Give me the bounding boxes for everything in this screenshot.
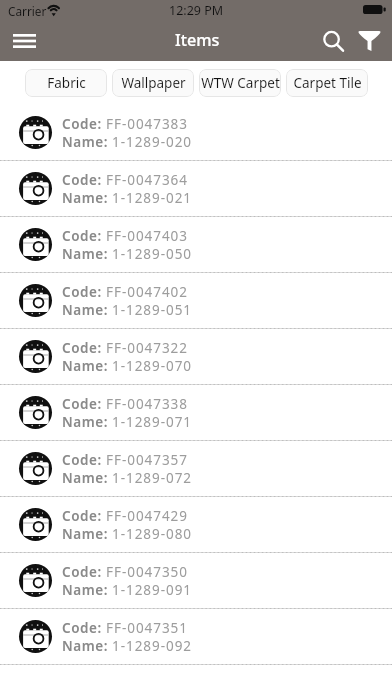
staticText: 12:29 PM xyxy=(169,2,224,19)
staticText: Code: xyxy=(62,395,106,413)
staticText: Code: xyxy=(62,283,106,301)
staticText: Name: xyxy=(62,189,112,207)
button[interactable]: Code: xyxy=(0,273,392,329)
button[interactable]: Code: xyxy=(0,161,392,217)
button[interactable]: Fabric xyxy=(25,69,107,97)
staticText: 1-1289-070 xyxy=(112,357,192,375)
staticText: Code: xyxy=(62,227,106,245)
staticText: FF-0047322 xyxy=(106,339,188,357)
staticText: Code: xyxy=(62,115,106,133)
staticText: Name: xyxy=(62,469,112,487)
button[interactable]: Code: xyxy=(0,553,392,609)
staticText: 1-1289-092 xyxy=(112,637,192,655)
staticText: FF-0047383 xyxy=(106,115,188,133)
staticText: Name: xyxy=(62,413,112,431)
button[interactable]: Code: xyxy=(0,441,392,497)
staticText: Code: xyxy=(62,339,106,357)
button[interactable]: Carpet Tile xyxy=(286,69,368,97)
staticText: Code: xyxy=(62,507,106,525)
staticText: FF-0047350 xyxy=(106,563,188,581)
staticText: 1-1289-080 xyxy=(112,525,192,543)
button[interactable]: Filter xyxy=(351,21,388,61)
staticText: Code: xyxy=(62,619,106,637)
staticText: Name: xyxy=(62,357,112,375)
staticText: FF-0047429 xyxy=(106,507,188,525)
button[interactable]: Code: xyxy=(0,105,392,161)
button[interactable]: Code: xyxy=(0,385,392,441)
staticText: FF-0047338 xyxy=(106,395,188,413)
staticText: FF-0047351 xyxy=(106,619,188,637)
staticText: FF-0047402 xyxy=(106,283,188,301)
button[interactable]: Wallpaper xyxy=(112,69,194,97)
button[interactable]: Code: xyxy=(0,217,392,273)
staticText: Fabric xyxy=(47,74,86,92)
staticText: FF-0047364 xyxy=(106,171,188,189)
button[interactable]: Code: xyxy=(0,497,392,553)
button[interactable]: Code: xyxy=(0,609,392,665)
staticText: 1-1289-072 xyxy=(112,469,192,487)
staticText: Name: xyxy=(62,301,112,319)
staticText: Items xyxy=(175,29,220,51)
button[interactable]: WTW Carpet xyxy=(199,69,281,97)
staticText: 1-1289-091 xyxy=(112,581,192,599)
staticText: Carpet Tile xyxy=(293,74,362,92)
button[interactable]: Code: xyxy=(0,329,392,385)
staticText: 1-1289-071 xyxy=(112,413,192,431)
staticText: 1-1289-050 xyxy=(112,245,192,263)
staticText: Name: xyxy=(62,245,112,263)
staticText: FF-0047357 xyxy=(106,451,188,469)
button[interactable]: Search xyxy=(314,21,351,61)
button[interactable]: Open navigation menu xyxy=(1,21,47,61)
staticText: Code: xyxy=(62,171,106,189)
staticText: WTW Carpet xyxy=(201,74,280,92)
staticText: Wallpaper xyxy=(121,74,186,92)
staticText: Name: xyxy=(62,133,112,151)
staticText: 1-1289-021 xyxy=(112,189,192,207)
staticText: Name: xyxy=(62,581,112,599)
staticText: Carrier xyxy=(8,3,47,19)
staticText: Code: xyxy=(62,451,106,469)
staticText: 1-1289-051 xyxy=(112,301,192,319)
staticText: 1-1289-020 xyxy=(112,133,192,151)
staticText: FF-0047403 xyxy=(106,227,188,245)
staticText: Name: xyxy=(62,525,112,543)
staticText: Name: xyxy=(62,637,112,655)
staticText: Code: xyxy=(62,563,106,581)
